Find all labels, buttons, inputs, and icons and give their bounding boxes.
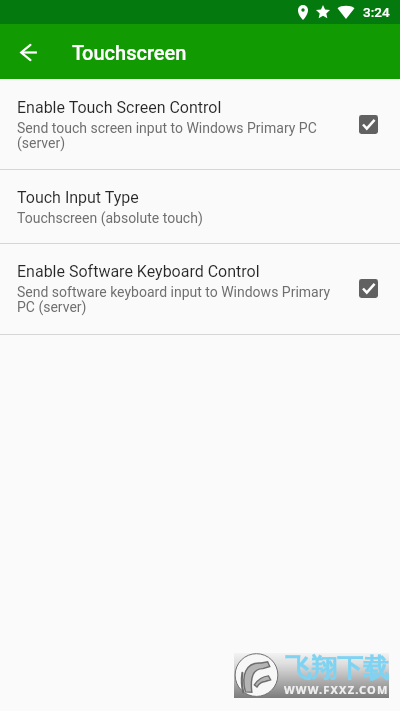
staticText: 3:24 [363,4,390,20]
staticText: 飞翔下载 [285,652,389,685]
staticText: Enable Touch Screen Control [17,98,222,117]
staticText: Touchscreen (absolute touch) [17,210,203,226]
staticText: Send touch screen input to Windows Prima… [17,120,317,152]
button[interactable]: Back [13,36,45,68]
button[interactable]: Enable Software Keyboard Control [0,244,400,334]
staticText: Touch Input Type [17,188,139,207]
staticText: Send software keyboard input to Windows … [17,284,331,316]
button[interactable]: Touch Input Type [0,170,400,243]
staticText: WWW.FXXZ.COM [284,682,389,697]
staticText: Touchscreen [72,41,187,64]
staticText: Enable Software Keyboard Control [17,262,260,281]
button[interactable]: Enable Touch Screen Control [0,79,400,169]
button[interactable]: Toggle [347,267,389,309]
button[interactable]: Toggle [347,103,389,145]
